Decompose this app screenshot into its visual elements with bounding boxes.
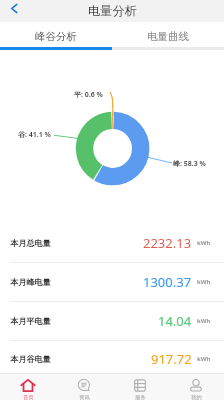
staticText: 峰谷分析 [35,30,77,43]
staticText: 1300.37 [143,273,192,291]
button[interactable]: 峰谷分析 [0,22,112,47]
button[interactable]: 电量曲线 [112,22,224,47]
staticText: 本月平电量 [10,316,51,326]
staticText: 服务 [135,394,146,400]
button[interactable]: 我的 [168,374,224,400]
staticText: 资讯 [79,394,90,400]
button[interactable]: 服务 [112,374,168,400]
staticText: 917.72 [151,350,192,368]
staticText: 本月谷电量 [10,354,51,364]
button[interactable]: 本月峰电量 [0,263,224,301]
staticText: 谷: 41.1 % [18,130,51,140]
staticText: 本月峰电量 [10,277,51,287]
button[interactable]: 本月总电量 [0,224,224,262]
staticText: 首页 [23,394,34,400]
staticText: 峰: 58.3 % [173,159,206,169]
staticText: 平: 0.6 % [74,90,103,100]
staticText: kWh [197,355,211,363]
staticText: kWh [197,278,211,286]
staticText: kWh [197,239,211,247]
staticText: 本月总电量 [10,238,51,248]
button[interactable]: 本月谷电量 [0,341,224,373]
staticText: 14.04 [158,312,192,330]
staticText: 2232.13 [143,234,192,252]
button[interactable]: 本月平电量 [0,302,224,340]
staticText: 电量分析 [88,3,137,18]
staticText: 电量曲线 [147,30,189,43]
button[interactable]: 资讯 [56,374,112,400]
button[interactable]: Back [0,0,24,22]
staticText: kWh [197,317,211,325]
staticText: 我的 [191,394,202,400]
button[interactable]: 首页 [0,374,56,400]
